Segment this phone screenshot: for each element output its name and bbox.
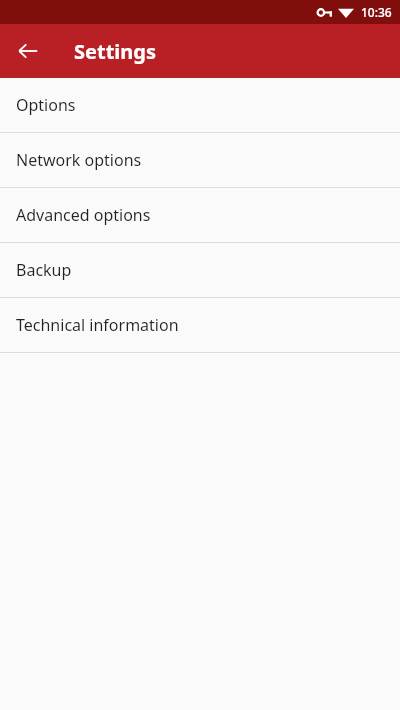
staticText: Backup bbox=[16, 259, 72, 281]
button[interactable]: Backup bbox=[0, 243, 400, 297]
button[interactable]: Technical information bbox=[0, 298, 400, 352]
button[interactable]: Options bbox=[0, 78, 400, 132]
staticText: Settings bbox=[74, 38, 156, 65]
staticText: 10:36 bbox=[361, 4, 392, 20]
staticText: Network options bbox=[16, 149, 142, 171]
button[interactable]: Network options bbox=[0, 133, 400, 187]
button[interactable]: Back bbox=[4, 27, 52, 75]
staticText: Advanced options bbox=[16, 204, 151, 226]
staticText: Technical information bbox=[16, 314, 179, 336]
staticText: Options bbox=[16, 94, 76, 116]
button[interactable]: Advanced options bbox=[0, 188, 400, 242]
